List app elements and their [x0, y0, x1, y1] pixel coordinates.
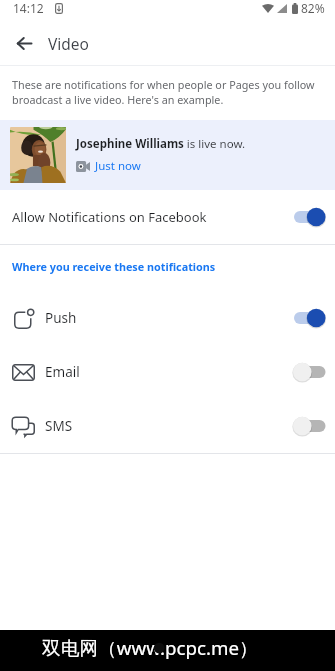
staticText: SMS [45, 417, 73, 435]
staticText: Just now [95, 158, 141, 174]
staticText: 双电网（www.pcpc.me） [42, 635, 258, 661]
staticText: Where you receive these notifications [12, 259, 216, 274]
staticText: Push [45, 309, 77, 327]
button[interactable]: Allow Notifications on Facebook [0, 190, 335, 244]
button[interactable]: Josephine Williams is live now. [0, 120, 335, 190]
button[interactable]: Back [0, 21, 48, 65]
staticText: Email [45, 363, 80, 381]
staticText: Josephine Williams is live now. [76, 136, 246, 152]
staticText: 14:12 [13, 0, 44, 16]
staticText: Video [48, 33, 89, 54]
staticText: 82% [301, 0, 325, 16]
staticText: These are notifications for when people … [12, 77, 324, 107]
button[interactable]: Push [0, 291, 335, 345]
button[interactable]: SMS [0, 399, 335, 453]
button[interactable]: Email [0, 345, 335, 399]
staticText: Allow Notifications on Facebook [12, 208, 207, 226]
